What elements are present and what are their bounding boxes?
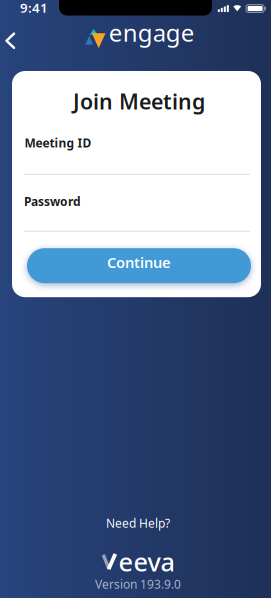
staticText: eeva bbox=[118, 545, 174, 578]
staticText: 9:41 bbox=[20, 0, 48, 16]
staticText: Password bbox=[24, 193, 81, 209]
staticText: Meeting ID bbox=[24, 135, 91, 151]
staticText: engage bbox=[109, 17, 195, 48]
staticText: Need Help? bbox=[106, 515, 170, 531]
staticText: Join Meeting bbox=[73, 87, 205, 115]
button[interactable]: Need Help? bbox=[106, 515, 170, 531]
button[interactable]: Back bbox=[0, 24, 16, 52]
staticText: Continue bbox=[107, 252, 171, 272]
button[interactable]: Continue bbox=[27, 248, 251, 283]
staticText: Version 193.9.0 bbox=[95, 576, 181, 592]
